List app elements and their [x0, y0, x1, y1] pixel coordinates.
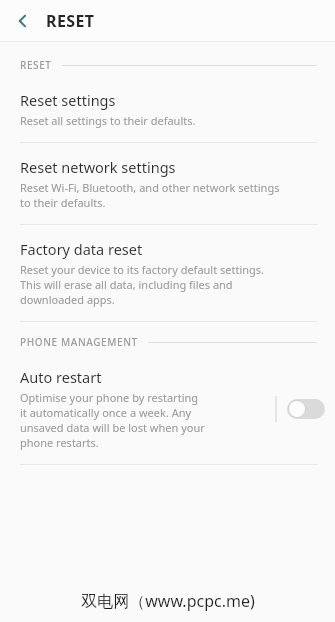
- staticText: Reset settings: [20, 90, 116, 110]
- button[interactable]: Auto restart toggle: [277, 387, 335, 431]
- button[interactable]: Factory data reset: [0, 225, 335, 321]
- staticText: Factory data reset: [20, 239, 143, 259]
- button[interactable]: Reset network settings: [0, 143, 335, 224]
- staticText: PHONE MANAGEMENT: [20, 335, 138, 349]
- staticText: Reset your device to its factory default…: [20, 262, 265, 307]
- button[interactable]: Back: [0, 0, 46, 41]
- staticText: Reset network settings: [20, 157, 176, 177]
- staticText: 双电网（www.pcpc.me): [81, 590, 255, 612]
- button[interactable]: Reset settings: [0, 76, 335, 142]
- button[interactable]: Auto restart: [0, 353, 335, 464]
- staticText: Optimise your phone by restarting it aut…: [20, 390, 205, 450]
- staticText: RESET: [46, 10, 95, 32]
- staticText: RESET: [20, 58, 52, 72]
- staticText: Reset Wi-Fi, Bluetooth, and other networ…: [20, 180, 280, 210]
- staticText: Reset all settings to their defaults.: [20, 113, 196, 128]
- staticText: Auto restart: [20, 367, 102, 387]
